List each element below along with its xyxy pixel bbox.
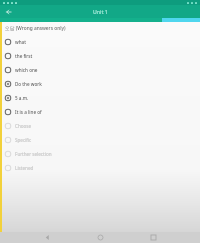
staticText: Do the work bbox=[15, 81, 42, 87]
staticText: which one bbox=[15, 67, 38, 73]
button[interactable]: Further selection bbox=[0, 147, 200, 161]
button[interactable]: the first bbox=[0, 49, 200, 63]
staticText: Specific bbox=[15, 137, 32, 143]
button[interactable]: Choose bbox=[0, 119, 200, 133]
staticText: 5 a.m. bbox=[15, 95, 29, 101]
staticText: It is a line of bbox=[15, 109, 42, 115]
staticText: the first bbox=[15, 53, 33, 59]
button[interactable]: 5 a.m. bbox=[0, 91, 200, 105]
button[interactable]: Home bbox=[94, 232, 106, 243]
staticText: Further selection bbox=[15, 151, 52, 157]
button[interactable]: which one bbox=[0, 63, 200, 77]
staticText: Listened bbox=[15, 165, 34, 171]
staticText: Choose bbox=[15, 123, 32, 129]
staticText: what bbox=[15, 39, 26, 45]
button[interactable]: Listened bbox=[0, 161, 200, 175]
button[interactable]: what bbox=[0, 35, 200, 49]
button[interactable]: It is a line of bbox=[0, 105, 200, 119]
button[interactable]: System back bbox=[41, 232, 53, 243]
staticText: Unit 1 bbox=[93, 8, 108, 15]
button[interactable]: Recent apps bbox=[147, 232, 159, 243]
button[interactable]: Back bbox=[3, 6, 14, 17]
staticText: 오답 (Wrong answers only) bbox=[5, 25, 66, 32]
button[interactable]: Specific bbox=[0, 133, 200, 147]
button[interactable]: Do the work bbox=[0, 77, 200, 91]
